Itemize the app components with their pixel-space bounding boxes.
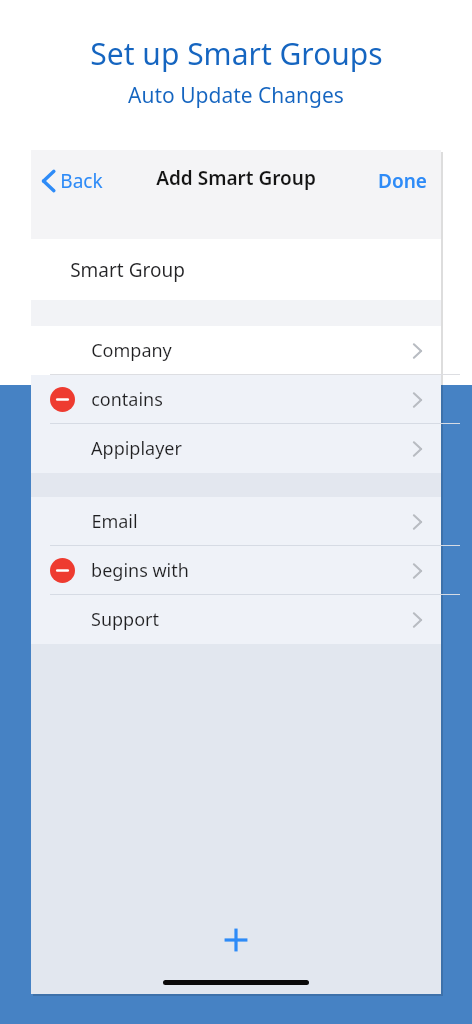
staticText: Support — [91, 607, 159, 632]
button[interactable]: begins with — [31, 546, 441, 595]
button[interactable]: Email — [31, 497, 441, 546]
staticText: Auto Update Changes — [128, 81, 344, 110]
staticText: begins with — [91, 558, 189, 583]
staticText: contains — [91, 387, 163, 412]
staticText: Done — [378, 168, 427, 194]
staticText: Set up Smart Groups — [90, 33, 383, 74]
staticText: Smart Group — [70, 257, 185, 283]
staticText: Email — [91, 509, 138, 534]
staticText: Add Smart Group — [156, 165, 316, 191]
button[interactable]: Back — [31, 160, 115, 202]
staticText: Appiplayer — [91, 436, 182, 461]
button[interactable]: Company — [31, 326, 441, 375]
button[interactable]: Support — [31, 595, 441, 644]
button[interactable]: Add condition — [214, 918, 258, 962]
button[interactable]: Smart Group — [31, 239, 441, 300]
button[interactable]: Appiplayer — [31, 424, 441, 473]
button[interactable]: Done — [364, 160, 441, 202]
staticText: Company — [91, 338, 172, 363]
staticText: Back — [60, 168, 103, 194]
button[interactable]: contains — [31, 375, 441, 424]
